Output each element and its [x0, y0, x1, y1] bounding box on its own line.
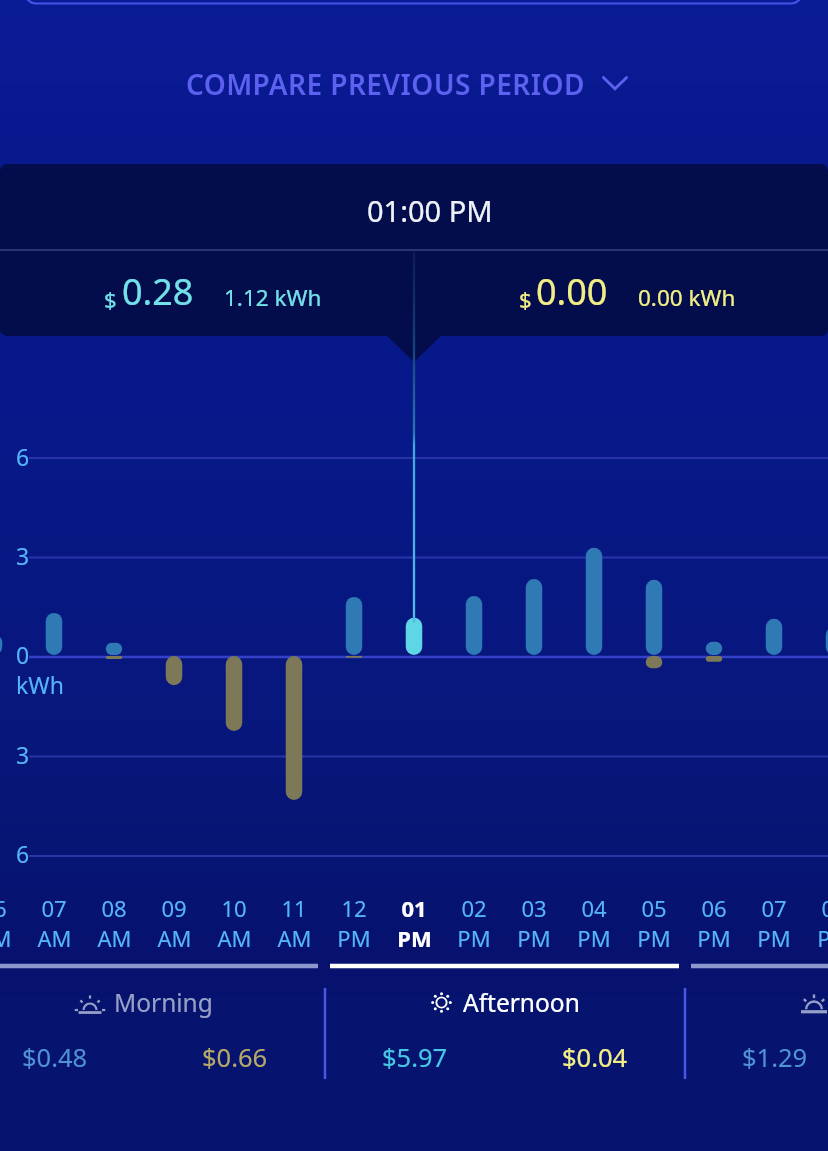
staticText: $ [104, 284, 117, 314]
staticText: 07 [761, 893, 787, 923]
button[interactable]: 07 [744, 893, 804, 953]
staticText: 08 [821, 893, 828, 923]
staticText: 01 [401, 893, 427, 923]
button[interactable]: 02 [444, 893, 504, 953]
button[interactable]: 08 [84, 893, 144, 953]
staticText: AM [277, 923, 312, 953]
staticText: 03 [521, 893, 547, 923]
staticText: AM [157, 923, 192, 953]
staticText: 06 [0, 893, 7, 923]
staticText: AM [97, 923, 132, 953]
staticText: 6 [16, 838, 30, 869]
staticText: kWh [16, 669, 64, 700]
button[interactable]: 06 [684, 893, 744, 953]
other: Afternoon [431, 992, 452, 1013]
staticText: 09 [161, 893, 187, 923]
staticText: 0.00 [536, 267, 608, 316]
staticText: Morning [114, 986, 213, 1019]
staticText: PM [337, 923, 371, 953]
staticText: 10 [221, 893, 247, 923]
button[interactable]: Afternoon [325, 986, 685, 1075]
staticText: 3 [16, 540, 30, 571]
staticText: PM [457, 923, 491, 953]
staticText: $5.97 [382, 1040, 448, 1075]
button[interactable]: 12 [324, 893, 384, 953]
staticText: 0.28 [122, 267, 194, 316]
staticText: PM [577, 923, 611, 953]
button[interactable]: 11 [264, 893, 324, 953]
staticText: 04 [581, 893, 607, 923]
staticText: AM [37, 923, 72, 953]
staticText: $0.04 [562, 1040, 628, 1075]
other: Morning [77, 990, 103, 1016]
staticText: PM [817, 923, 828, 953]
staticText: AM [0, 923, 12, 953]
button[interactable]: 06 [0, 893, 24, 953]
button[interactable]: 07 [24, 893, 84, 953]
staticText: $0.48 [22, 1040, 88, 1075]
staticText: 12 [341, 893, 367, 923]
staticText: 08 [101, 893, 127, 923]
staticText: 02 [461, 893, 487, 923]
staticText: 05 [641, 893, 667, 923]
staticText: 07 [41, 893, 67, 923]
staticText: PM [697, 923, 731, 953]
staticText: PM [757, 923, 791, 953]
staticText: 06 [701, 893, 727, 923]
button[interactable]: 01 [384, 893, 444, 953]
staticText: 01:00 PM [367, 191, 493, 230]
staticText: 0 [16, 639, 30, 670]
button[interactable]: 05 [624, 893, 684, 953]
staticText: 3 [16, 739, 30, 770]
button[interactable]: COMPARE PREVIOUS PERIOD [0, 0, 822, 168]
staticText: $0.66 [202, 1040, 268, 1075]
button[interactable]: Evening [685, 986, 828, 1075]
staticText: AM [217, 923, 252, 953]
button[interactable]: 10 [204, 893, 264, 953]
staticText: 1.12 kWh [224, 282, 322, 313]
staticText: 6 [16, 441, 30, 472]
staticText: Afternoon [463, 986, 580, 1019]
staticText: 0.00 kWh [638, 282, 736, 313]
staticText: PM [517, 923, 551, 953]
staticText: 11 [281, 893, 307, 923]
staticText: COMPARE PREVIOUS PERIOD [186, 65, 585, 103]
button[interactable]: Morning [0, 986, 325, 1075]
staticText: PM [397, 923, 432, 953]
staticText: PM [637, 923, 671, 953]
button[interactable]: 08 [804, 893, 828, 953]
staticText: $ [519, 284, 532, 314]
other: Evening [801, 990, 827, 1016]
staticText: $1.29 [742, 1040, 808, 1075]
button[interactable]: 03 [504, 893, 564, 953]
button[interactable]: 09 [144, 893, 204, 953]
button[interactable]: 04 [564, 893, 624, 953]
